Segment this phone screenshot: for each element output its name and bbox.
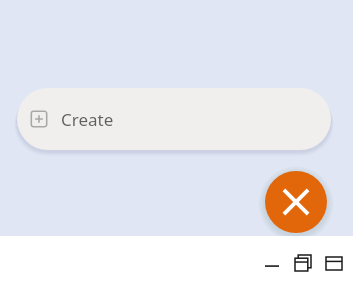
button[interactable]: Close	[265, 171, 327, 233]
button[interactable]: Create	[17, 88, 331, 150]
button[interactable]: Minimize	[261, 252, 283, 274]
staticText: Create	[61, 108, 114, 131]
button[interactable]: Maximize	[323, 252, 345, 274]
button[interactable]: Restore window	[292, 252, 314, 274]
